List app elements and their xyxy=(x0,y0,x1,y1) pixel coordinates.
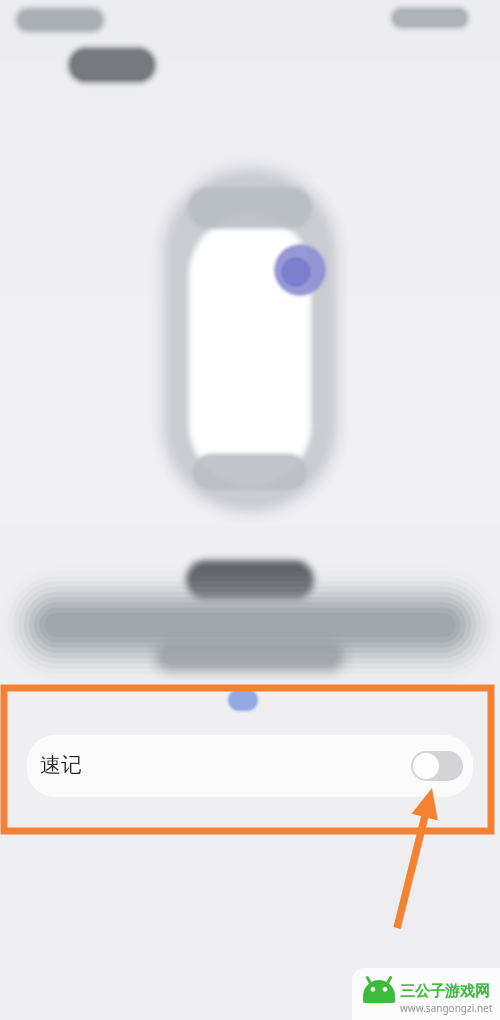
button[interactable] xyxy=(27,735,473,797)
button[interactable]: 速记 开关, 关闭 xyxy=(411,751,463,781)
